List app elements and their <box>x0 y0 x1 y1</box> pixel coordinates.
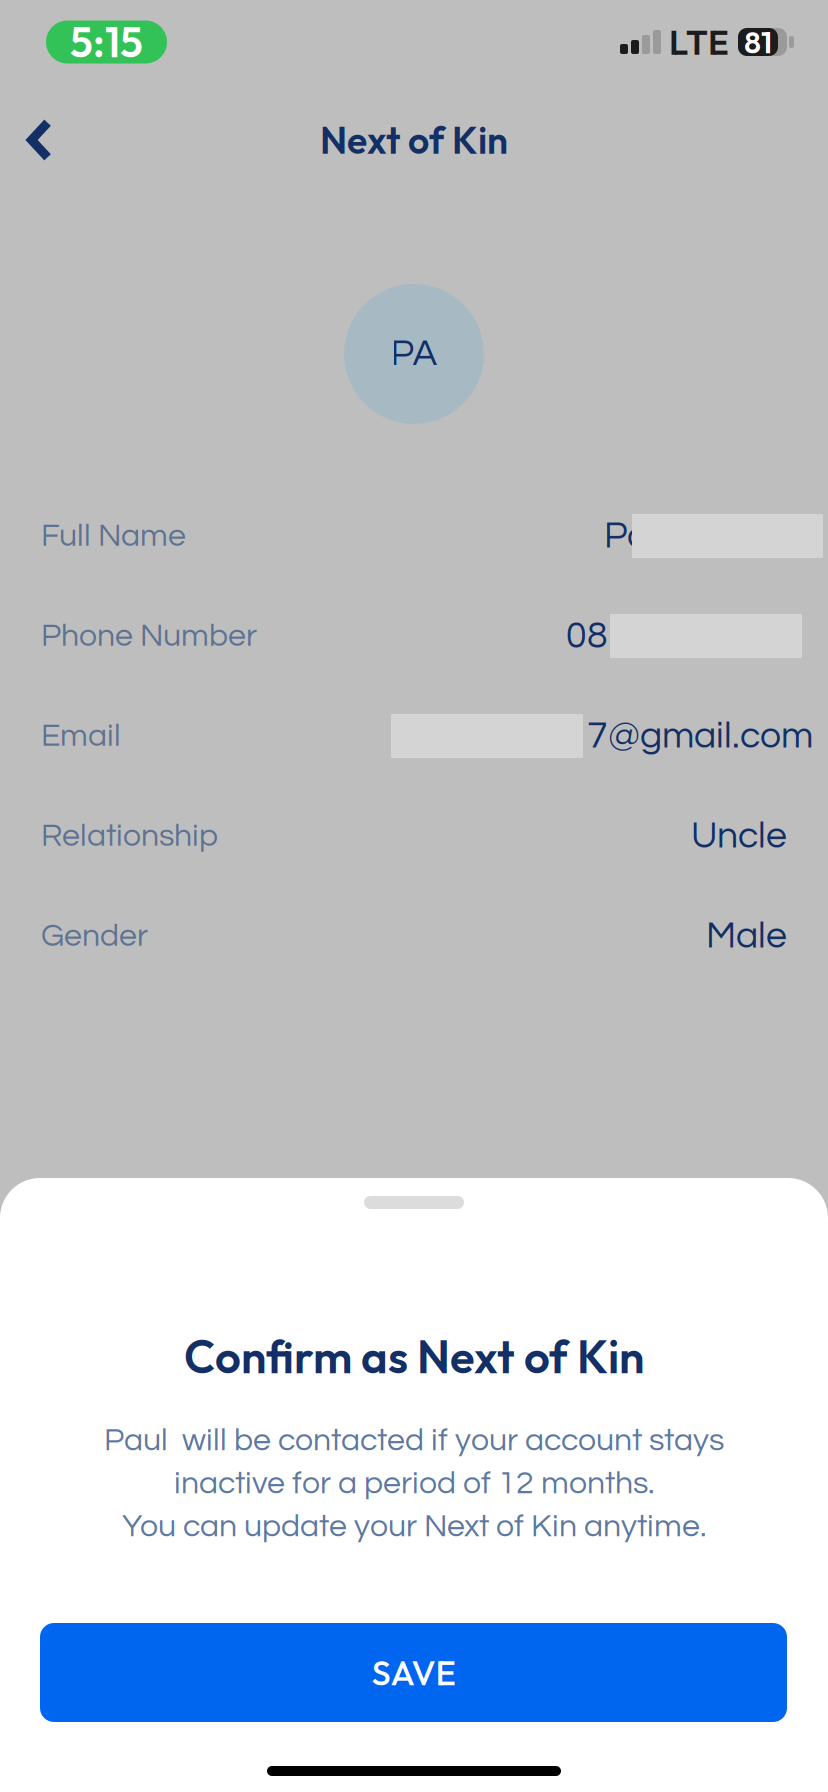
staticText: Confirm as Next of Kin <box>184 1328 644 1385</box>
staticText: LTE <box>669 20 729 64</box>
staticText: PA <box>390 335 437 373</box>
button[interactable]: Back <box>0 95 80 184</box>
staticText: 5:15 <box>70 16 143 68</box>
staticText: Phone Number <box>41 619 257 652</box>
staticText: Full Name <box>41 519 186 552</box>
staticText: 81 <box>744 23 772 61</box>
staticText: Gender <box>41 919 148 952</box>
staticText: 7@gmail.com <box>587 717 813 755</box>
staticText: inactive for a period of 12 months. <box>174 1467 654 1500</box>
staticText: SAVE <box>371 1651 455 1694</box>
staticText: Paul will be contacted if your account s… <box>104 1424 724 1457</box>
staticText: You can update your Next of Kin anytime. <box>122 1510 706 1543</box>
button[interactable]: SAVE <box>40 1623 787 1722</box>
staticText: Uncle <box>691 817 787 855</box>
staticText: 08 <box>566 617 608 655</box>
staticText: Next of Kin <box>320 116 508 163</box>
staticText: Email <box>41 719 121 752</box>
staticText: Relationship <box>41 819 218 852</box>
staticText: Male <box>706 917 787 955</box>
staticText: Pa <box>604 517 649 555</box>
